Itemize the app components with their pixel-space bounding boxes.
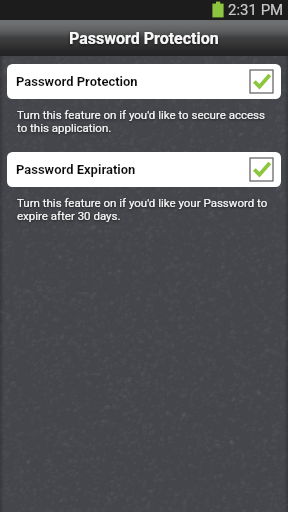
- staticText: Password Protection: [69, 29, 219, 48]
- staticText: 2:31 PM: [228, 1, 284, 19]
- other: Battery full: [0, 0, 288, 20]
- other: Toggle: [250, 158, 273, 181]
- button[interactable]: Password Expiration: [7, 152, 281, 187]
- staticText: Turn this feature on if you'd like your …: [17, 196, 268, 222]
- other: Toggle: [250, 70, 273, 93]
- button[interactable]: Password Protection: [7, 64, 281, 99]
- staticText: Password Expiration: [16, 162, 250, 177]
- staticText: Password Protection: [16, 74, 250, 89]
- staticText: Turn this feature on if you'd like to se…: [17, 108, 265, 134]
